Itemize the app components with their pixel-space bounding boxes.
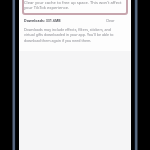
staticText: Downloads may include effects, filters, … <box>24 27 115 43</box>
staticText: Clear your cache to free up space. This … <box>24 0 126 10</box>
staticText: Clear <box>106 18 115 23</box>
button[interactable]: Downloads: 331.6MB <box>19 18 131 23</box>
staticText: Downloads: 331.6MB <box>24 18 61 23</box>
